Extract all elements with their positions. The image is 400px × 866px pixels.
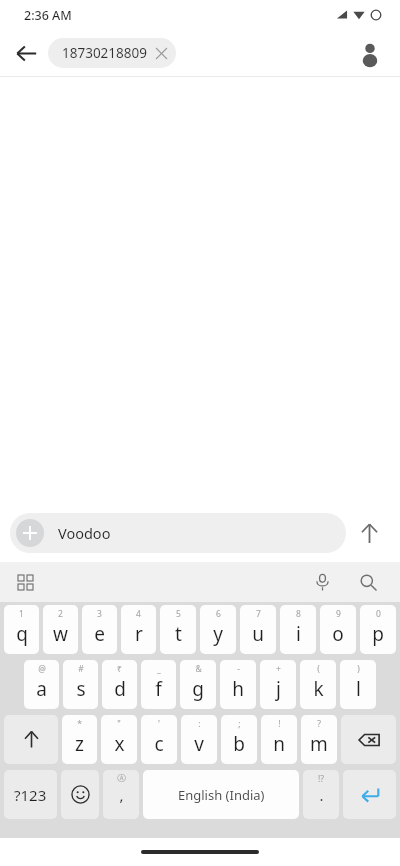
staticText: + [276, 663, 281, 675]
staticText: 0 [376, 608, 381, 620]
button[interactable]: ? [301, 715, 337, 764]
staticText: k [313, 676, 324, 702]
staticText: o [332, 621, 344, 647]
button[interactable]: 7 [240, 605, 276, 654]
button[interactable]: Add attachment [10, 513, 346, 553]
button[interactable]: Enter [343, 770, 396, 819]
staticText: , [119, 785, 124, 805]
button[interactable]: English (India) [143, 770, 299, 819]
staticText: & [195, 663, 202, 675]
staticText: @ [38, 663, 46, 675]
staticText: f [155, 676, 162, 702]
staticText: w [53, 621, 68, 647]
staticText: i [296, 621, 301, 647]
button[interactable]: Emoji [61, 770, 99, 819]
button[interactable]: + [260, 660, 296, 709]
staticText: . [319, 785, 324, 805]
staticText: 2 [58, 608, 63, 620]
button[interactable]: Search [350, 564, 386, 600]
staticText: e [94, 621, 105, 647]
staticText: g [192, 676, 204, 702]
button[interactable]: 18730218809 [48, 38, 176, 68]
staticText: ₹ [117, 663, 122, 675]
staticText: t [175, 621, 182, 647]
staticText: * [77, 718, 82, 730]
staticText: 5 [176, 608, 181, 620]
button[interactable]: 0 [360, 605, 396, 654]
staticText: p [372, 621, 384, 647]
button[interactable]: Contact details [350, 33, 390, 73]
button[interactable]: 9 [320, 605, 356, 654]
button[interactable]: ?123 [4, 770, 57, 819]
staticText: 6 [216, 608, 221, 620]
button[interactable]: ' [141, 715, 177, 764]
staticText: ; [238, 718, 241, 730]
button[interactable]: Back [6, 33, 46, 73]
button[interactable]: 6 [200, 605, 236, 654]
staticText: d [114, 676, 126, 702]
button[interactable]: @ [24, 660, 59, 709]
staticText: - [237, 663, 240, 675]
button[interactable]: Backspace [341, 715, 396, 764]
button[interactable]: Add attachment [16, 519, 44, 547]
button[interactable]: 4 [121, 605, 156, 654]
button[interactable]: _ [141, 660, 176, 709]
staticText: ! [278, 718, 281, 730]
staticText: 3 [97, 608, 102, 620]
staticText: 8 [296, 608, 301, 620]
staticText: 2:36 AM [24, 7, 72, 24]
button[interactable]: Send [346, 510, 392, 556]
staticText: 7 [256, 608, 261, 620]
staticText: 1 [19, 608, 24, 620]
button[interactable]: ) [340, 660, 376, 709]
staticText: n [273, 731, 285, 757]
staticText: " [117, 718, 121, 730]
staticText: ? [317, 718, 321, 730]
staticText: : [198, 718, 201, 730]
button[interactable]: Voice input [304, 564, 340, 600]
staticText: ) [357, 663, 360, 675]
staticText: q [16, 621, 28, 647]
staticText: r [135, 621, 143, 647]
button[interactable]: 5 [160, 605, 196, 654]
button[interactable]: 3 [82, 605, 117, 654]
staticText: ' [158, 718, 160, 730]
button[interactable]: ( [300, 660, 336, 709]
button[interactable]: & [180, 660, 216, 709]
button[interactable]: Keyboard options [8, 565, 42, 599]
button[interactable]: Shift [4, 715, 58, 764]
staticText: y [213, 621, 223, 647]
staticText: b [233, 731, 245, 757]
staticText: x [114, 731, 125, 757]
staticText: z [75, 731, 84, 757]
button[interactable]: : [181, 715, 217, 764]
staticText: v [194, 731, 204, 757]
button[interactable]: 2 [43, 605, 78, 654]
staticText: u [252, 621, 264, 647]
staticText: c [154, 731, 164, 757]
button[interactable]: ; [221, 715, 257, 764]
staticText: 9 [336, 608, 341, 620]
staticText: !? [318, 773, 324, 785]
button[interactable]: - [220, 660, 256, 709]
staticText: Voodoo [58, 523, 111, 543]
button[interactable]: " [101, 715, 137, 764]
button[interactable]: # [63, 660, 98, 709]
button[interactable]: ₹ [102, 660, 137, 709]
button[interactable]: Ⓐ [103, 770, 139, 819]
button[interactable]: 1 [4, 605, 39, 654]
staticText: s [76, 676, 86, 702]
staticText: 18730218809 [62, 44, 147, 62]
staticText: Ⓐ [117, 773, 126, 784]
button[interactable]: ! [261, 715, 297, 764]
staticText: ( [317, 663, 320, 675]
staticText: ?123 [14, 785, 47, 805]
button[interactable]: !? [303, 770, 339, 819]
staticText: English (India) [178, 786, 265, 804]
button[interactable]: * [62, 715, 97, 764]
button[interactable]: 8 [280, 605, 316, 654]
staticText: j [276, 676, 281, 702]
staticText: # [78, 663, 84, 675]
staticText: m [310, 731, 328, 757]
staticText: _ [157, 663, 161, 675]
